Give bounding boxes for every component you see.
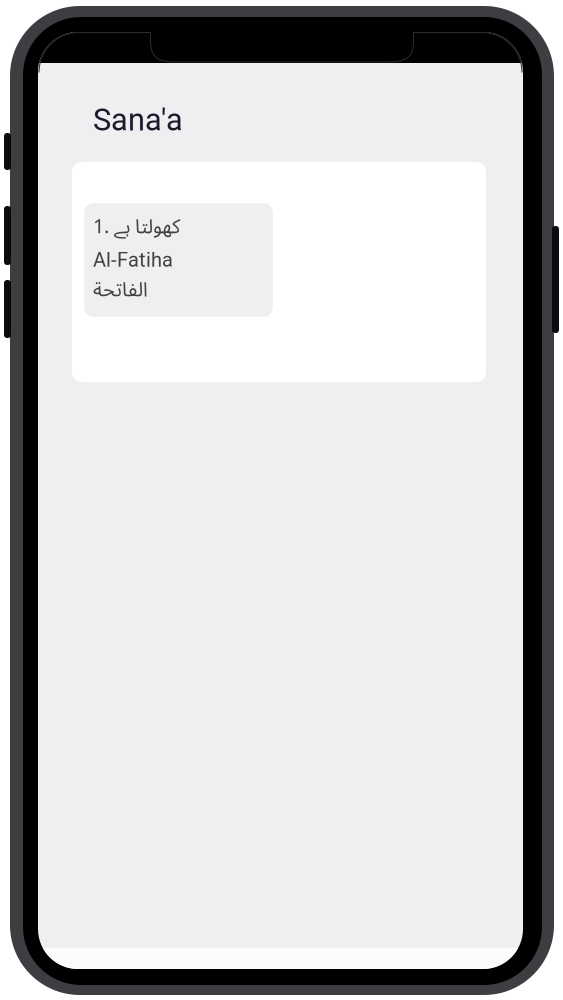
- button[interactable]: ‎1. کھولتا ہے: [72, 162, 486, 382]
- staticText: ‎الفاتحة: [93, 269, 148, 311]
- staticText: Al-Fatiha: [93, 248, 173, 272]
- staticText: Sana'a: [93, 102, 183, 138]
- staticText: ‎1. کھولتا ہے: [93, 206, 180, 248]
